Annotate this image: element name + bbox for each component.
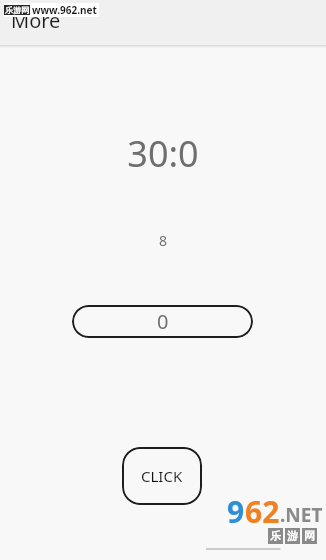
staticText: 8: [0, 231, 326, 250]
staticText: 9: [227, 491, 245, 532]
button[interactable]: CLICK: [122, 447, 202, 505]
staticText: 网: [304, 529, 315, 543]
staticText: 62: [245, 491, 280, 532]
staticText: 乐游网: [5, 5, 29, 15]
button[interactable]: 0: [72, 305, 253, 338]
staticText: More: [11, 7, 61, 34]
staticText: 乐: [270, 529, 281, 543]
staticText: .NET: [280, 502, 323, 528]
staticText: www.962.net: [32, 3, 97, 17]
staticText: CLICK: [141, 466, 183, 486]
staticText: 游: [287, 529, 298, 543]
staticText: 30:0: [0, 129, 326, 178]
staticText: 0: [157, 308, 169, 335]
